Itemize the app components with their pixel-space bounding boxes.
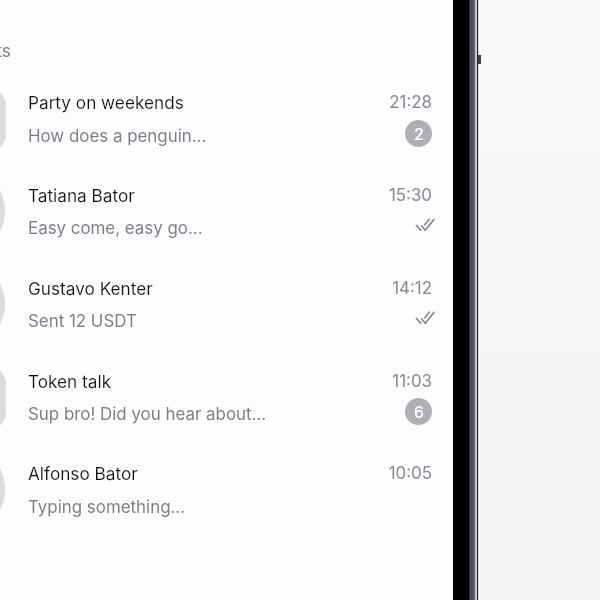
- staticText: Gustavo Kenter: [28, 278, 153, 299]
- staticText: Sent 12 USDT: [28, 311, 137, 331]
- staticText: Easy come, easy go...: [28, 218, 203, 238]
- button[interactable]: [0, 165, 453, 258]
- other: Message read: [414, 216, 438, 234]
- staticText: Sup bro! Did you hear about...: [28, 404, 267, 424]
- staticText: Party on weekends: [28, 92, 184, 113]
- staticText: Typing something...: [28, 497, 186, 517]
- staticText: Token talk: [28, 371, 112, 392]
- staticText: 2: [414, 124, 424, 143]
- staticText: 11:03: [312, 371, 432, 391]
- staticText: 10:05: [312, 463, 432, 483]
- staticText: 14:12: [312, 278, 432, 298]
- staticText: Chats: [0, 40, 11, 61]
- button[interactable]: [0, 443, 453, 536]
- staticText: 15:30: [312, 185, 432, 205]
- button[interactable]: [0, 258, 453, 351]
- button[interactable]: [0, 72, 453, 165]
- staticText: Tatiana Bator: [28, 185, 135, 206]
- staticText: How does a penguin...: [28, 126, 207, 146]
- staticText: Alfonso Bator: [28, 463, 138, 484]
- button[interactable]: [0, 350, 453, 443]
- staticText: 6: [414, 402, 424, 421]
- other: Message read: [414, 309, 438, 327]
- staticText: 21:28: [312, 92, 432, 112]
